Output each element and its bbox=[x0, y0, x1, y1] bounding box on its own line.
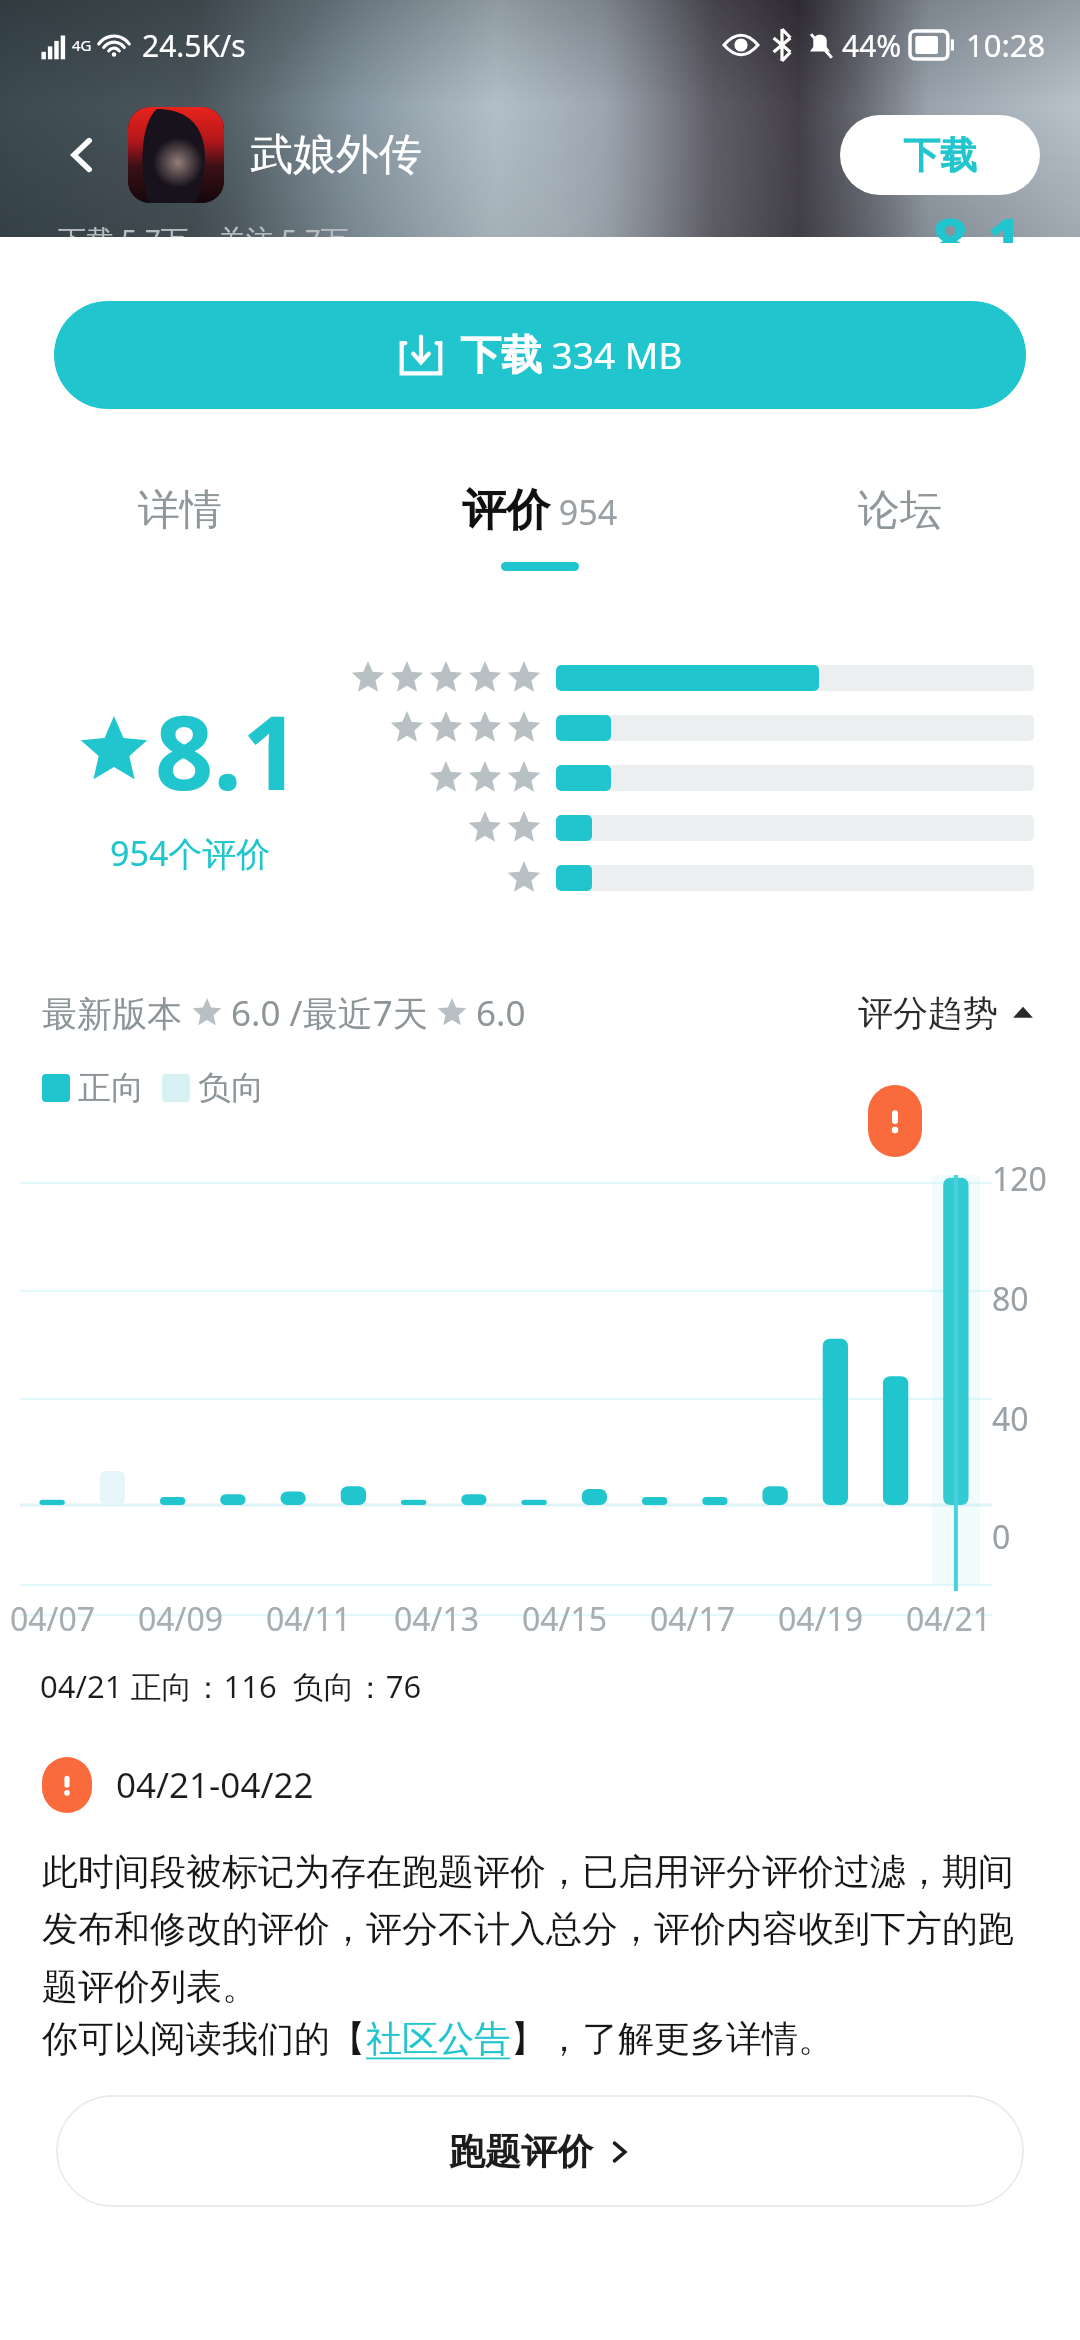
staticText: 跑题评价 bbox=[449, 2129, 593, 2174]
button[interactable]: 警告 bbox=[868, 1085, 922, 1157]
staticText: 04/09 bbox=[138, 1597, 224, 1641]
staticText: 最新版本 bbox=[42, 989, 192, 1037]
staticText: 120 bbox=[992, 1157, 1047, 1201]
staticText: 6.0 /最近7天 bbox=[222, 989, 437, 1037]
staticText: 04/15 bbox=[522, 1597, 608, 1641]
staticText: 4G bbox=[72, 35, 92, 55]
button[interactable]: 跑题评价 bbox=[56, 2095, 1024, 2207]
staticText: 你可以阅读我们的【社区公告】，了解更多详情。 bbox=[42, 2016, 834, 2061]
staticText: 80 bbox=[992, 1277, 1029, 1321]
button[interactable]: 评分趋势 bbox=[858, 991, 1034, 1035]
staticText: 6.0 bbox=[467, 989, 526, 1037]
staticText: 04/11 bbox=[266, 1597, 352, 1641]
staticText: 负向 bbox=[198, 1067, 264, 1109]
staticText: 论坛 bbox=[858, 484, 942, 537]
button[interactable]: 评价 954 bbox=[360, 483, 720, 538]
staticText: 0 bbox=[992, 1515, 1011, 1559]
staticText: 下载 bbox=[903, 132, 977, 179]
button[interactable]: 详情 bbox=[0, 484, 360, 537]
staticText: 下载 5.7万 关注 5.7万 bbox=[58, 220, 349, 237]
button[interactable]: 返回 bbox=[54, 127, 110, 183]
button[interactable]: 下载 bbox=[840, 115, 1040, 195]
staticText: 954个评价 bbox=[110, 830, 271, 876]
button[interactable]: 论坛 bbox=[720, 484, 1080, 537]
staticText: 04/19 bbox=[778, 1597, 864, 1641]
staticText: 44% bbox=[842, 25, 902, 66]
staticText: 此时间段被标记为存在跑题评价，已启用评分评价过滤，期间发布和修改的评价，评分不计… bbox=[42, 1849, 1038, 2010]
staticText: 下载 334 MB bbox=[460, 329, 683, 381]
staticText: 04/21-04/22 bbox=[116, 1761, 314, 1809]
staticText: 40 bbox=[992, 1397, 1029, 1441]
staticText: 武娘外传 bbox=[250, 128, 422, 182]
staticText: 正向 bbox=[78, 1067, 144, 1109]
button[interactable]: 下载 334 MB bbox=[54, 301, 1026, 409]
staticText: 评价 954 bbox=[462, 483, 618, 538]
staticText: 10:28 bbox=[966, 24, 1046, 66]
staticText: 8.1 bbox=[932, 197, 1024, 243]
staticText: 24.5K/s bbox=[142, 25, 246, 66]
staticText: 04/07 bbox=[10, 1597, 96, 1641]
staticText: 04/21 bbox=[906, 1597, 992, 1641]
staticText: 04/17 bbox=[650, 1597, 736, 1641]
staticText: 04/13 bbox=[394, 1597, 480, 1641]
staticText: 评分趋势 bbox=[858, 991, 998, 1035]
staticText: 8.1 bbox=[155, 681, 301, 820]
staticText: 04/21 正向：116 负向：76 bbox=[40, 1665, 422, 1707]
staticText: 详情 bbox=[138, 484, 222, 537]
